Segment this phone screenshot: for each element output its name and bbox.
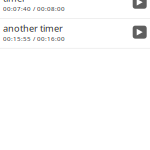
button[interactable]: Start timer xyxy=(133,23,147,39)
staticText: another timer xyxy=(3,22,63,34)
button[interactable]: another timer xyxy=(3,19,133,43)
staticText: timer xyxy=(3,0,26,4)
button[interactable]: Start timer xyxy=(133,0,147,9)
button[interactable]: timer xyxy=(3,0,133,13)
staticText: 00:15:55 / 00:16:00 xyxy=(3,34,65,43)
staticText: 00:07:40 / 00:08:00 xyxy=(3,4,65,13)
